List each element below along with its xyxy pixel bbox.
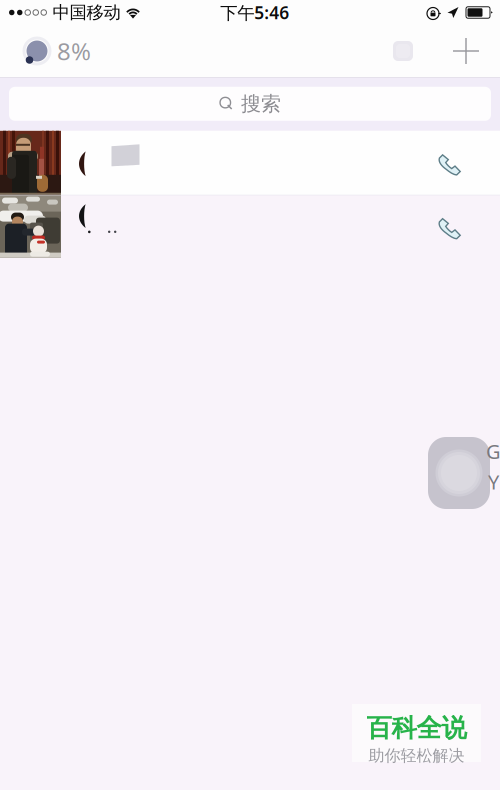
staticText: 搜索 bbox=[241, 91, 281, 116]
button[interactable]: Scan bbox=[383, 31, 423, 71]
button[interactable]: 8% bbox=[0, 29, 91, 73]
staticText: G bbox=[486, 438, 500, 465]
staticText: 中国移动 bbox=[52, 2, 120, 23]
staticText: 百科全说 bbox=[366, 713, 466, 744]
staticText: 下午5:46 bbox=[220, 1, 289, 24]
button[interactable]: AssistiveTouch bbox=[428, 437, 490, 509]
button[interactable] bbox=[0, 196, 500, 258]
button[interactable] bbox=[0, 131, 500, 195]
staticText: 8% bbox=[57, 35, 91, 67]
staticText: Y bbox=[488, 469, 499, 495]
button[interactable]: New chat bbox=[443, 38, 489, 64]
button[interactable]: Call bbox=[430, 145, 470, 184]
button[interactable]: 搜索 bbox=[0, 78, 500, 131]
button[interactable]: Call bbox=[430, 209, 470, 248]
staticText: 助你轻松解决 bbox=[368, 746, 464, 765]
